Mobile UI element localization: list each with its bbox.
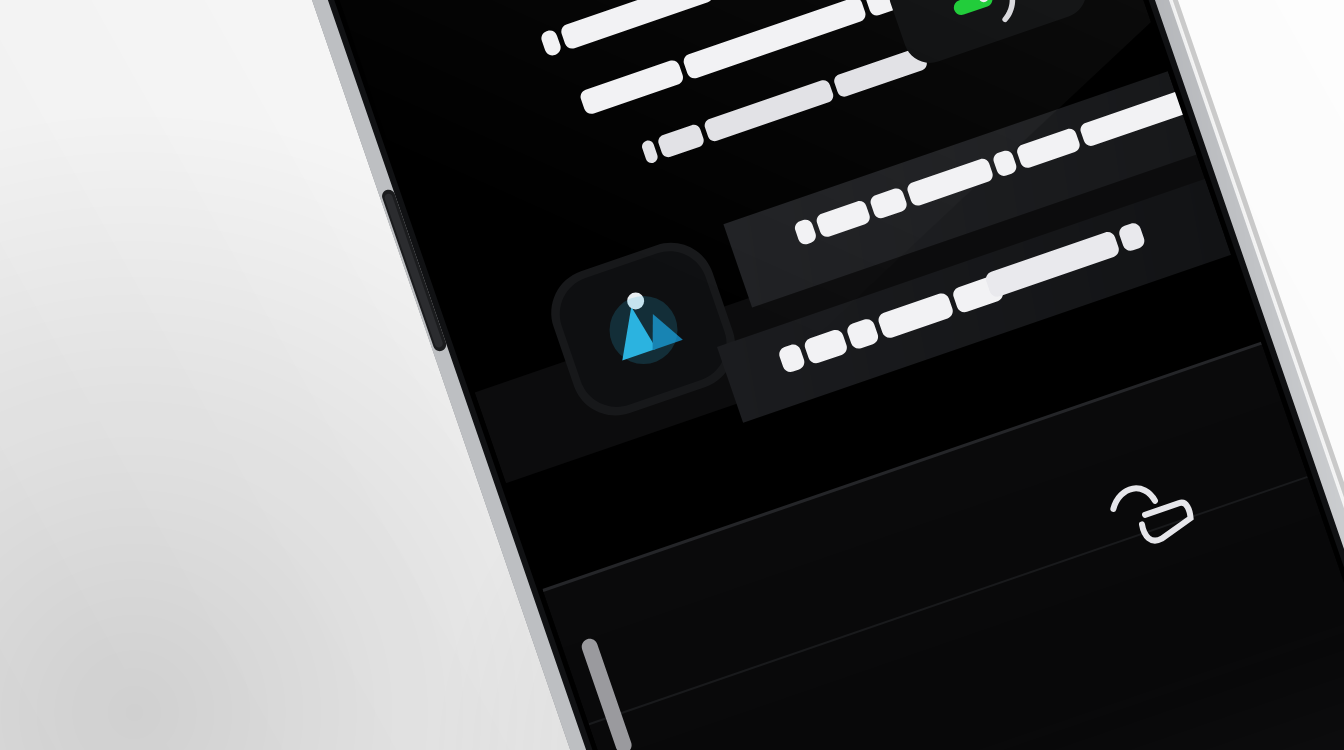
other: Conversation [0,0,1344,750]
button[interactable]: Messaging app on phone [0,0,1344,750]
